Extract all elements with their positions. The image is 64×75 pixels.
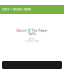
- staticText: Billy Taylor: [28, 38, 35, 40]
- staticText: Dolls: [28, 32, 35, 36]
- button[interactable]: SHEET MUSIC NOW: [0, 5, 64, 14]
- staticText: Dance Of The Paper: [16, 29, 47, 32]
- staticText: Sheet Music Single: [25, 40, 39, 42]
- staticText: SHEET MUSIC NOW: [2, 8, 31, 11]
